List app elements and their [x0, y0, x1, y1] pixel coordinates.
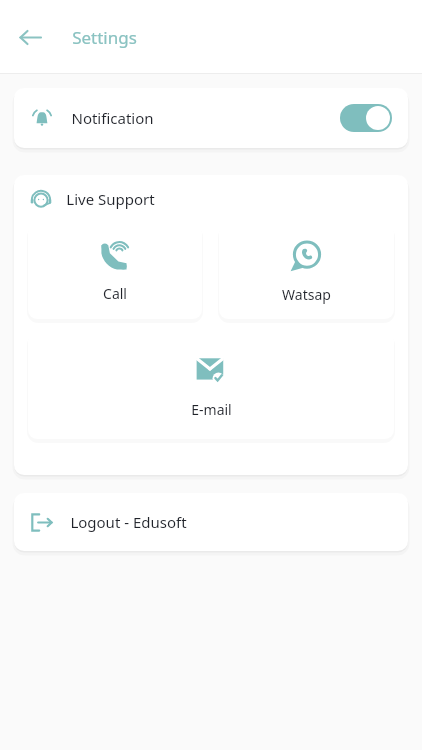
button[interactable]: Logout - Edusoft [14, 493, 408, 551]
staticText: Notification [71, 108, 154, 128]
button[interactable]: Watsap [219, 224, 394, 319]
button[interactable]: Notification [14, 88, 408, 148]
staticText: Watsap [282, 285, 331, 304]
staticText: Call [103, 284, 127, 303]
staticText: Logout - Edusoft [70, 512, 187, 532]
button[interactable]: Call [28, 224, 202, 319]
staticText: E-mail [191, 400, 232, 419]
button[interactable]: Toggle notification [340, 104, 392, 132]
staticText: Settings [72, 26, 137, 49]
button[interactable]: E-mail [28, 332, 394, 439]
staticText: Live Support [66, 189, 155, 209]
button[interactable]: Back [8, 15, 52, 59]
